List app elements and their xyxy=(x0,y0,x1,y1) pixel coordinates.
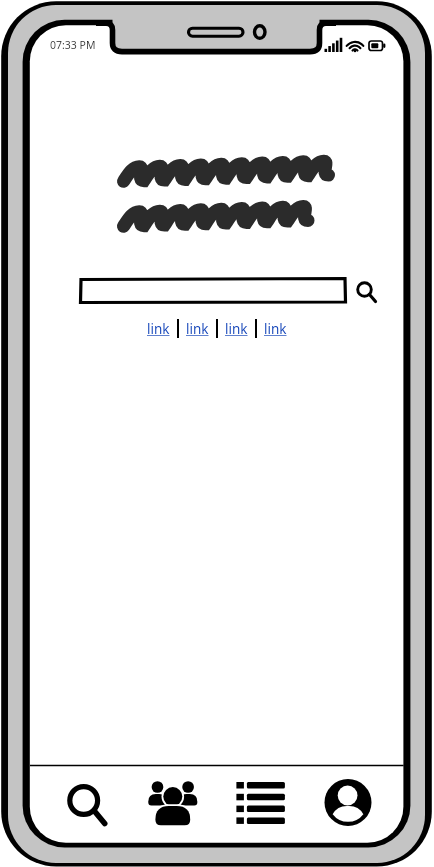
button[interactable]: Search xyxy=(30,765,123,843)
button[interactable]: link xyxy=(147,320,170,338)
staticText: link xyxy=(186,320,209,338)
button[interactable]: Groups xyxy=(123,765,216,843)
button[interactable]: Search xyxy=(353,278,378,303)
staticText: link xyxy=(147,320,170,338)
button[interactable]: Profile xyxy=(310,765,404,843)
staticText: link xyxy=(264,320,287,338)
button[interactable]: link xyxy=(225,320,248,338)
staticText: 07:33 PM xyxy=(50,38,96,52)
button[interactable]: Search field xyxy=(79,277,347,304)
button[interactable]: link xyxy=(186,320,209,338)
button[interactable]: Feed xyxy=(216,765,310,843)
button[interactable]: link xyxy=(264,320,287,338)
staticText: link xyxy=(225,320,248,338)
